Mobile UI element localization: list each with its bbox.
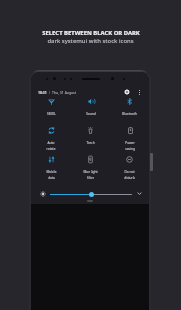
staticText: Blue light filter [83,170,98,180]
staticText: Torch [86,141,95,145]
button[interactable]: Settings [122,87,132,97]
staticText: Auto rotate [46,141,56,151]
staticText: SMOL [47,112,56,116]
button[interactable]: Mobile data [31,156,71,185]
button[interactable]: Auto rotate [31,127,71,156]
button[interactable]: More options [134,87,144,97]
staticText: Thu, 31 August [52,90,76,95]
staticText: SELECT BETWEEN BLACK OR DARK [42,29,140,37]
staticText: dark systemui with stock icons [47,37,134,45]
staticText: Mobile data [46,170,57,180]
button[interactable]: Bluetooth [110,98,149,127]
button[interactable]: Torch [71,127,110,156]
staticText: Sound [86,112,96,116]
button[interactable]: Expand [136,190,143,197]
button[interactable]: Do not disturb [110,156,149,185]
staticText: Do not disturb [124,170,135,180]
staticText: 18:31 [38,90,47,95]
button[interactable]: Power saving [110,127,149,156]
staticText: Power saving [125,141,135,151]
button[interactable]: Blue light filter [71,156,110,185]
button[interactable]: SMOL [31,98,71,127]
staticText: Bluetooth [122,112,137,116]
button[interactable]: Sound [71,98,110,127]
